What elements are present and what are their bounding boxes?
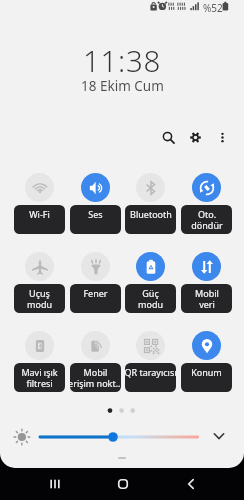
button[interactable]: Recents	[33, 468, 77, 500]
button[interactable]: Wi-Fi	[14, 173, 65, 234]
staticText: Güç modu	[138, 287, 163, 311]
button[interactable]: Uçuş modu	[14, 252, 65, 313]
staticText: Uçuş modu	[27, 287, 52, 311]
staticText: QR tarayıcısı	[124, 366, 177, 378]
staticText: %52	[203, 1, 223, 15]
button[interactable]: Fener	[70, 252, 121, 313]
button[interactable]: Bluetooth	[125, 173, 176, 234]
staticText: Wi-Fi	[29, 208, 50, 220]
button[interactable]: Mavi ışık filtresi	[14, 331, 65, 392]
staticText: Konum	[191, 366, 222, 378]
button[interactable]: Expand	[208, 425, 230, 447]
staticText: 18 Ekim Cum	[81, 77, 164, 95]
button[interactable]: Settings	[183, 125, 208, 150]
button[interactable]: More options	[210, 125, 235, 150]
button[interactable]: Search	[156, 125, 181, 150]
staticText: 11:38	[83, 40, 162, 80]
staticText: Ses	[88, 208, 103, 220]
button[interactable]: QR tarayıcısı	[125, 331, 176, 392]
button[interactable]: Konum	[181, 331, 232, 392]
staticText: Bluetooth	[130, 208, 172, 220]
staticText: Mobil veri	[195, 287, 219, 311]
button[interactable]: Güç modu	[125, 252, 176, 313]
staticText: Oto. döndür	[191, 208, 223, 232]
button[interactable]: Ses	[70, 173, 121, 234]
button[interactable]: Mobil erişim nokt...	[70, 331, 121, 392]
staticText: Fener	[83, 287, 108, 299]
staticText: Mavi ışık filtresi	[21, 366, 58, 390]
button[interactable]: Home	[101, 468, 145, 500]
button[interactable]: Mobil veri	[181, 252, 232, 313]
button[interactable]: Back	[169, 468, 213, 500]
button[interactable]: Oto. döndür	[181, 173, 232, 234]
staticText: Mobil erişim nokt...	[68, 366, 123, 390]
